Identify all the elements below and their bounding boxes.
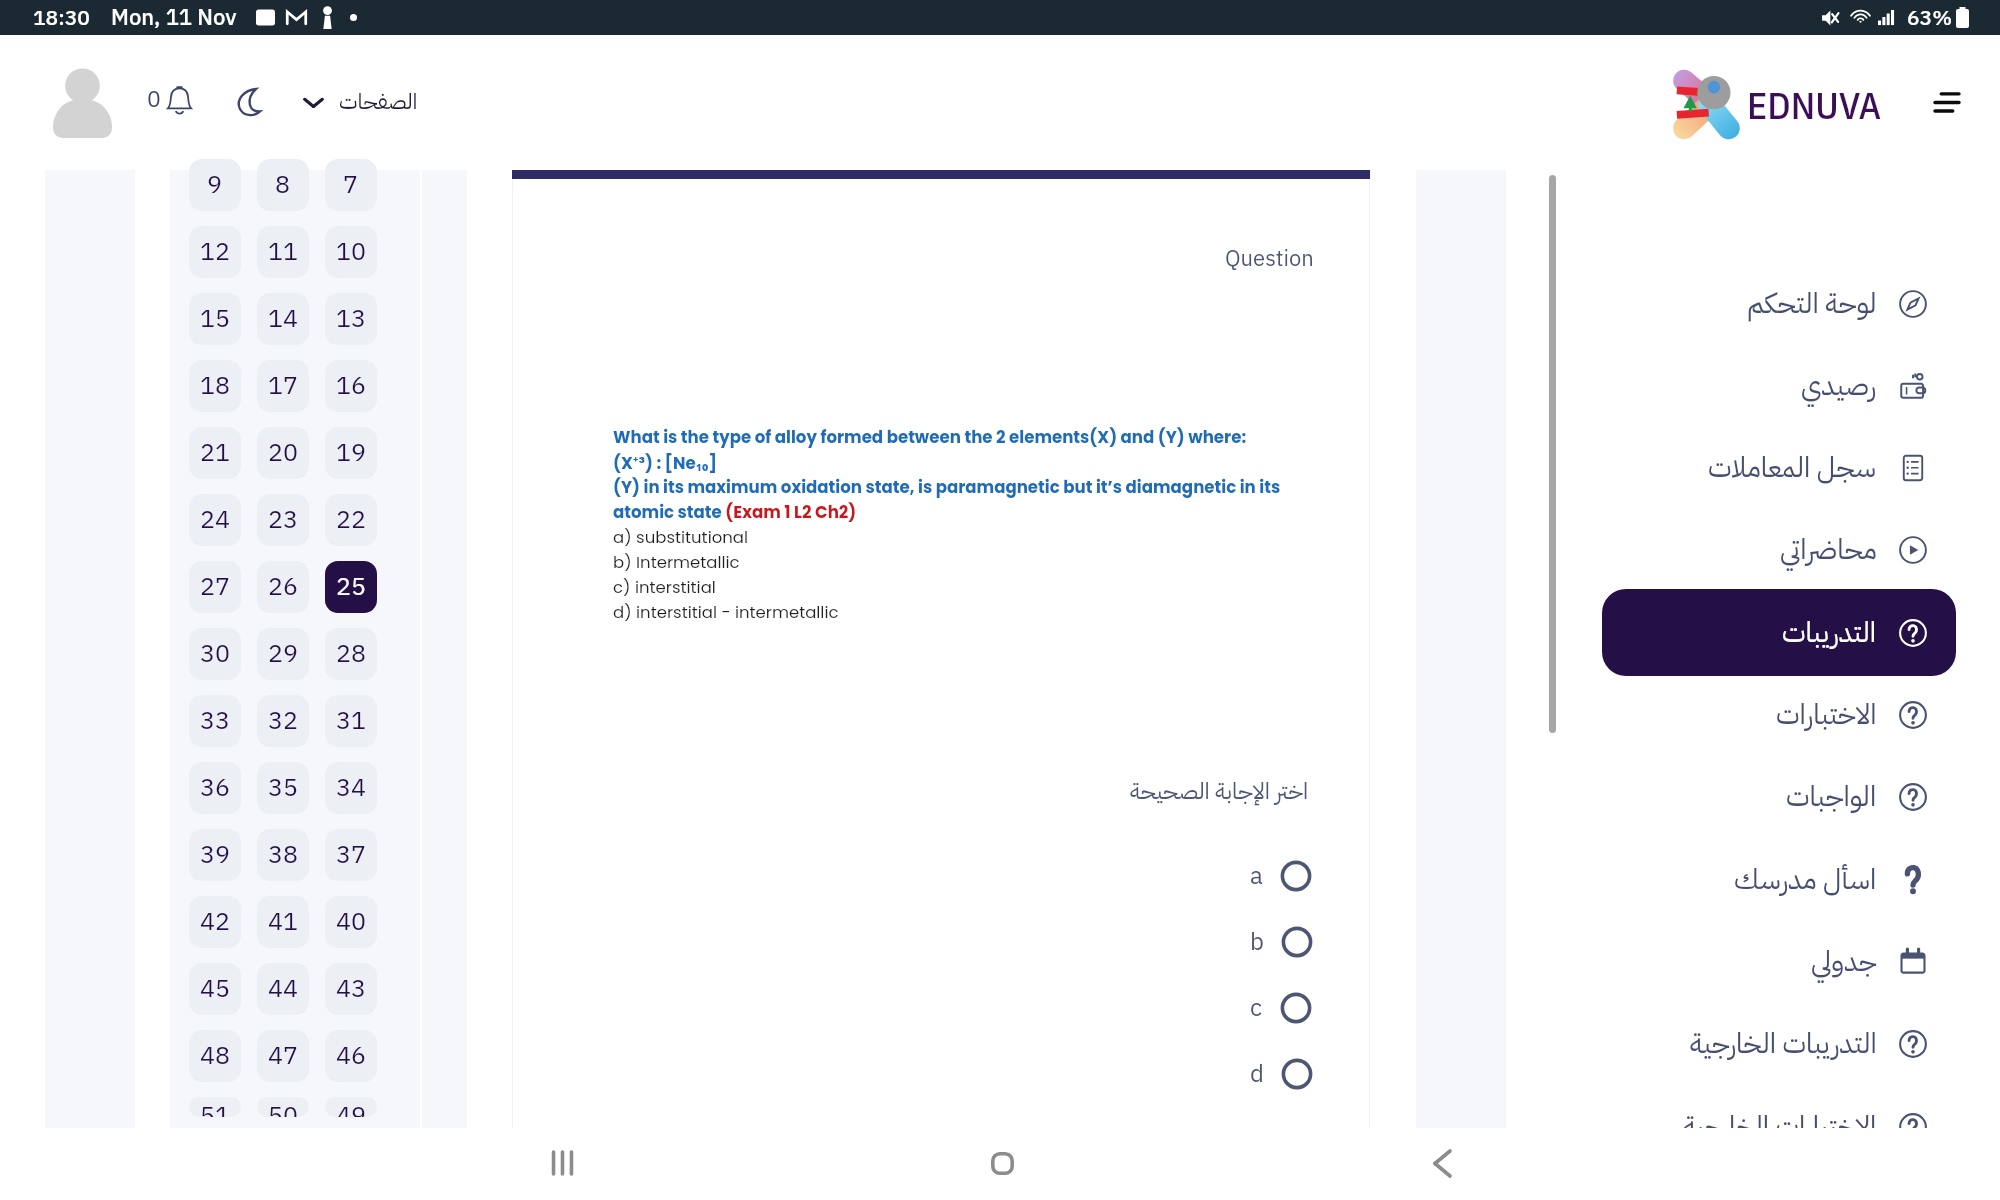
button[interactable]: 46: [325, 1030, 377, 1082]
button[interactable]: 11: [257, 226, 309, 278]
button[interactable]: Menu: [1925, 80, 1969, 124]
staticText: 28: [336, 635, 367, 673]
button[interactable]: 9: [189, 159, 241, 211]
staticText: 34: [336, 769, 367, 807]
button[interactable]: Profile: [51, 68, 114, 138]
staticText: 30: [200, 635, 231, 673]
button[interactable]: 45: [189, 963, 241, 1015]
button[interactable]: 12: [189, 226, 241, 278]
staticText: 32: [268, 702, 299, 740]
button[interactable]: 10: [325, 226, 377, 278]
staticText: 26: [268, 568, 299, 606]
button[interactable]: 20: [257, 427, 309, 479]
button[interactable]: 39: [189, 829, 241, 881]
button[interactable]: 7: [325, 159, 377, 211]
button[interactable]: Recents: [527, 1128, 597, 1198]
button[interactable]: 40: [325, 896, 377, 948]
button[interactable]: الاختبارات: [1602, 671, 1956, 758]
button[interactable]: 37: [325, 829, 377, 881]
button[interactable]: 47: [257, 1030, 309, 1082]
button[interactable]: 23: [257, 494, 309, 546]
button[interactable]: 16: [325, 360, 377, 412]
button[interactable]: b: [1250, 920, 1314, 964]
button[interactable]: 30: [189, 628, 241, 680]
staticText: اختر الإجابة الصحيحة: [1130, 774, 1309, 809]
button[interactable]: 51: [189, 1097, 241, 1117]
button[interactable]: c: [1250, 986, 1313, 1030]
staticText: 49: [336, 1097, 367, 1117]
button[interactable]: Home: [967, 1128, 1037, 1198]
staticText: التدريبات الخارجية: [1690, 1023, 1877, 1065]
button[interactable]: 34: [325, 762, 377, 814]
button[interactable]: 17: [257, 360, 309, 412]
button[interactable]: الصفحات: [303, 85, 418, 118]
staticText: 43: [336, 970, 367, 1008]
staticText: 24: [200, 501, 231, 539]
button[interactable]: جدولي: [1602, 918, 1956, 1005]
staticText: 46: [336, 1037, 367, 1075]
button[interactable]: d: [1250, 1052, 1314, 1096]
staticText: (Y) in its maximum oxidation state, is p…: [613, 476, 1281, 499]
button[interactable]: 27: [189, 561, 241, 613]
button[interactable]: 26: [257, 561, 309, 613]
staticText: 29: [268, 635, 299, 673]
button[interactable]: 28: [325, 628, 377, 680]
button[interactable]: 19: [325, 427, 377, 479]
button[interactable]: التدريبات: [1602, 589, 1956, 676]
button[interactable]: 50: [257, 1097, 309, 1117]
button[interactable]: 38: [257, 829, 309, 881]
button[interactable]: 18: [189, 360, 241, 412]
button[interactable]: 25: [325, 561, 377, 613]
button[interactable]: 42: [189, 896, 241, 948]
staticText: 13: [336, 300, 367, 338]
button[interactable]: 21: [189, 427, 241, 479]
staticText: الاختبارات: [1776, 694, 1877, 736]
staticText: b) Intermetallic: [613, 551, 740, 574]
staticText: 41: [268, 903, 299, 941]
button[interactable]: 35: [257, 762, 309, 814]
button[interactable]: Back: [1407, 1128, 1477, 1198]
staticText: a: [1250, 858, 1263, 894]
button[interactable]: 15: [189, 293, 241, 345]
button[interactable]: 8: [257, 159, 309, 211]
staticText: 50: [268, 1097, 299, 1117]
button[interactable]: محاضراتي: [1602, 506, 1956, 593]
button[interactable]: 29: [257, 628, 309, 680]
staticText: 47: [268, 1037, 299, 1075]
button[interactable]: سجل المعاملات: [1602, 424, 1956, 511]
staticText: a) substitutional: [613, 526, 749, 549]
button[interactable]: Dark mode: [231, 85, 264, 118]
staticText: محاضراتي: [1780, 529, 1877, 571]
staticText: d) interstitial - intermetallic: [613, 601, 839, 624]
staticText: 18: [200, 367, 231, 405]
button[interactable]: 44: [257, 963, 309, 1015]
button[interactable]: 33: [189, 695, 241, 747]
button[interactable]: التدريبات الخارجية: [1602, 1000, 1956, 1087]
button[interactable]: 13: [325, 293, 377, 345]
button[interactable]: 36: [189, 762, 241, 814]
button[interactable]: 22: [325, 494, 377, 546]
staticText: 31: [336, 702, 367, 740]
button[interactable]: 41: [257, 896, 309, 948]
staticText: d: [1250, 1056, 1264, 1092]
button[interactable]: 14: [257, 293, 309, 345]
button[interactable]: رصيدي: [1602, 342, 1956, 429]
button[interactable]: a: [1250, 854, 1313, 898]
button[interactable]: 24: [189, 494, 241, 546]
button[interactable]: الاختبارات الخارجية: [1602, 1083, 1956, 1170]
button[interactable]: 32: [257, 695, 309, 747]
button[interactable]: 43: [325, 963, 377, 1015]
button[interactable]: اسأل مدرسك: [1602, 836, 1956, 923]
button[interactable]: الواجبات: [1602, 753, 1956, 840]
button[interactable]: 31: [325, 695, 377, 747]
staticText: 9: [207, 166, 223, 204]
button[interactable]: 49: [325, 1097, 377, 1117]
staticText: 45: [200, 970, 231, 1008]
staticText: 21: [200, 434, 231, 472]
button[interactable]: 48: [189, 1030, 241, 1082]
staticText: 20: [268, 434, 299, 472]
staticText: 18:30: [33, 2, 90, 34]
staticText: لوحة التحكم: [1747, 283, 1877, 325]
button[interactable]: Notifications: [147, 82, 194, 117]
button[interactable]: لوحة التحكم: [1602, 260, 1956, 347]
